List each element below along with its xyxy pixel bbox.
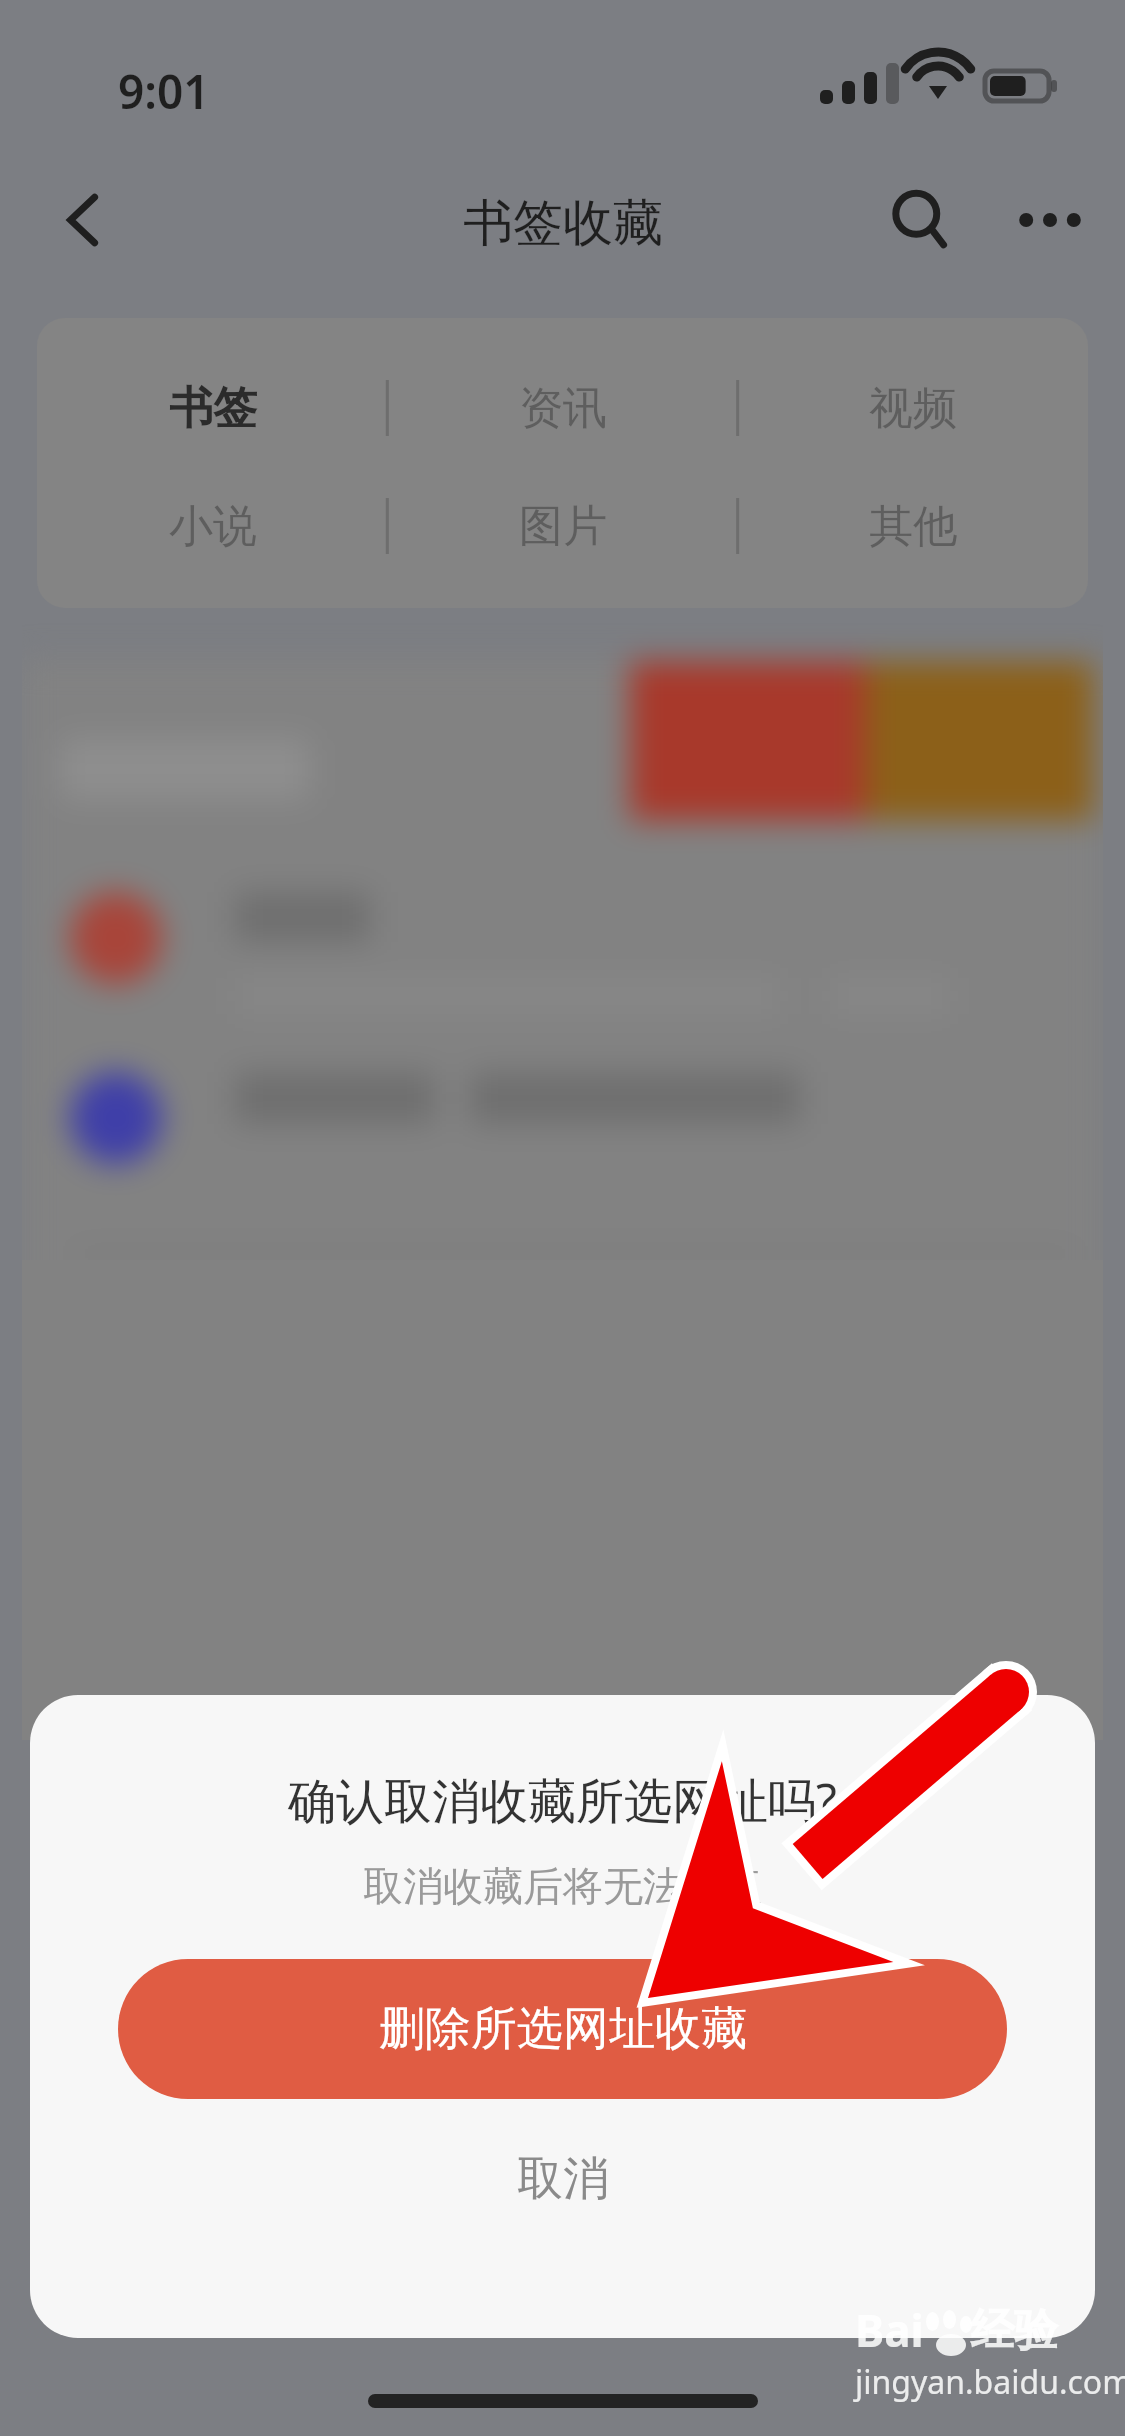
button[interactable]: 视频	[738, 358, 1088, 458]
button[interactable]: 其他	[738, 476, 1088, 576]
button[interactable]: 书签	[37, 358, 388, 458]
staticText: 其他	[869, 499, 957, 554]
staticText: 确认取消收藏所选网址吗?	[288, 1767, 837, 1833]
staticText: 9:01	[118, 60, 210, 123]
staticText: 删除所选网址收藏	[379, 2000, 747, 2058]
staticText: 小说	[169, 499, 257, 554]
staticText: 取消收藏后将无法恢复	[363, 1861, 763, 1911]
staticText: Bai	[855, 2300, 924, 2360]
staticText: 经验	[970, 2303, 1058, 2358]
button[interactable]: 资讯	[388, 358, 738, 458]
button[interactable]: 图片	[388, 476, 738, 576]
staticText: 图片	[519, 499, 607, 554]
staticText: 取消	[517, 2150, 609, 2208]
staticText: 书签	[169, 381, 257, 436]
staticText: 视频	[869, 381, 957, 436]
staticText: 书签收藏	[463, 192, 663, 255]
button[interactable]: 取消	[30, 2099, 1095, 2259]
button[interactable]: 删除所选网址收藏	[118, 1959, 1007, 2099]
button[interactable]: Back	[30, 165, 140, 275]
staticText: jingyan.baidu.com	[855, 2360, 1125, 2404]
staticText: 资讯	[519, 381, 607, 436]
button[interactable]: 小说	[37, 476, 388, 576]
button[interactable]: More options	[995, 165, 1105, 275]
button[interactable]: Search	[865, 165, 975, 275]
